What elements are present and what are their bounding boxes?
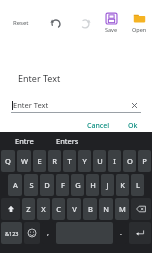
staticText: ,	[47, 228, 49, 238]
staticText: Enter Text	[13, 100, 49, 110]
button[interactable]: X	[37, 198, 50, 220]
staticText: G	[75, 180, 81, 190]
button[interactable]: J	[101, 174, 114, 196]
button[interactable]: B	[83, 198, 97, 220]
button[interactable]: O	[123, 150, 136, 172]
staticText: Y	[82, 156, 87, 166]
button[interactable]: E	[33, 150, 46, 172]
staticText: Z	[26, 204, 31, 214]
staticText: S	[29, 180, 34, 190]
button[interactable]: Reset	[4, 6, 38, 40]
button[interactable]: S	[24, 174, 38, 196]
staticText: H	[90, 180, 96, 190]
button[interactable]: Ok	[122, 119, 144, 133]
button[interactable]: Undo	[44, 11, 68, 35]
staticText: L	[136, 180, 140, 190]
button[interactable]: Open	[127, 12, 152, 33]
button[interactable]: Enters	[53, 134, 82, 148]
staticText: Reset	[13, 19, 29, 27]
button[interactable]: H	[86, 174, 99, 196]
staticText: C	[56, 204, 61, 214]
button[interactable]: Cancel	[81, 119, 116, 133]
button[interactable]: .	[115, 222, 127, 244]
staticText: Q	[5, 156, 11, 166]
staticText: M	[119, 204, 126, 214]
button[interactable]: Enter	[129, 222, 151, 244]
button[interactable]: W	[17, 150, 31, 172]
staticText: W	[21, 156, 28, 166]
staticText: B	[88, 204, 93, 214]
staticText: F	[61, 180, 65, 190]
button[interactable]: Entre	[12, 134, 37, 148]
staticText: Enter Text	[18, 72, 61, 84]
staticText: Save	[105, 26, 118, 33]
button[interactable]: K	[116, 174, 129, 196]
button[interactable]: M	[115, 198, 129, 220]
staticText: X	[41, 204, 46, 214]
staticText: R	[52, 156, 57, 166]
button[interactable]: G	[71, 174, 84, 196]
staticText: Enters	[56, 136, 79, 146]
button[interactable]: F	[56, 174, 69, 196]
staticText: P	[142, 156, 147, 166]
button[interactable]: Redo	[73, 11, 97, 35]
staticText: O	[127, 156, 133, 166]
staticText: A	[13, 180, 18, 190]
staticText: K	[120, 180, 125, 190]
staticText: D	[44, 180, 50, 190]
staticText: T	[67, 156, 72, 166]
staticText: Cancel	[87, 121, 110, 131]
button[interactable]: N	[99, 198, 113, 220]
button[interactable]: Z	[22, 198, 35, 220]
button[interactable]: ,	[42, 222, 54, 244]
staticText: Entre	[15, 136, 34, 146]
button[interactable]: Shift	[1, 198, 20, 220]
button[interactable]: L	[131, 174, 144, 196]
staticText: E	[37, 156, 42, 166]
button[interactable]: &123	[1, 222, 22, 244]
button[interactable]: C	[52, 198, 65, 220]
button[interactable]: Y	[78, 150, 91, 172]
button[interactable]: D	[40, 174, 54, 196]
button[interactable]: Emoji	[24, 222, 40, 244]
button[interactable]: I	[108, 150, 121, 172]
button[interactable]: Save	[99, 12, 124, 33]
button[interactable]: A	[8, 174, 22, 196]
button[interactable]: Clear text	[128, 99, 140, 111]
button[interactable]: R	[48, 150, 61, 172]
staticText: V	[72, 204, 77, 214]
button[interactable]: V	[67, 198, 81, 220]
button[interactable]: T	[63, 150, 76, 172]
staticText: U	[97, 156, 103, 166]
staticText: Open	[132, 26, 147, 33]
button[interactable]: Q	[1, 150, 15, 172]
staticText: &123	[5, 230, 19, 237]
staticText: .	[120, 228, 122, 238]
staticText: I	[113, 156, 116, 166]
staticText: Ok	[128, 121, 138, 131]
button[interactable]: Backspace	[131, 198, 151, 220]
staticText: J	[106, 180, 109, 190]
staticText: N	[103, 204, 109, 214]
button[interactable]: P	[138, 150, 151, 172]
button[interactable]: U	[93, 150, 106, 172]
